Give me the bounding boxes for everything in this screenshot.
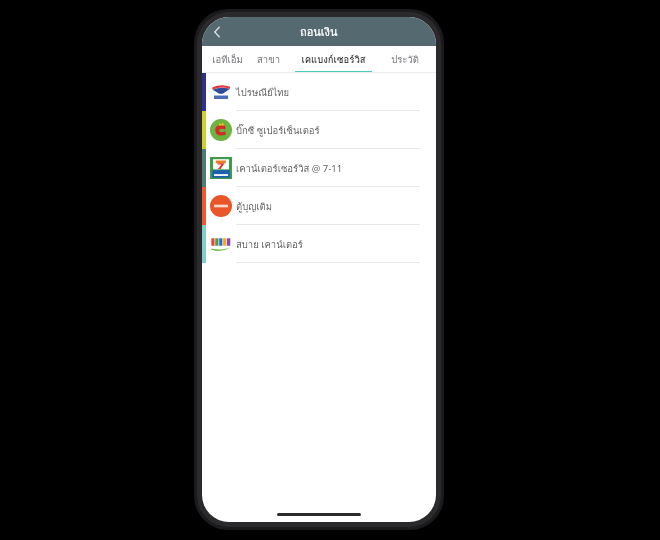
button[interactable]: Back bbox=[204, 19, 230, 45]
staticText: เคแบงก์เซอร์วิส bbox=[301, 52, 366, 67]
staticText: ถอนเงิน bbox=[300, 23, 338, 40]
button[interactable]: เคาน์เตอร์เซอร์วิส @ 7-11 bbox=[202, 149, 436, 187]
staticText: ตู้บุญเติม bbox=[236, 199, 272, 214]
button[interactable]: ไปรษณีย์ไทย bbox=[202, 73, 436, 111]
button[interactable]: เคแบงก์เซอร์วิส bbox=[288, 46, 378, 73]
button[interactable]: ตู้บุญเติม bbox=[202, 187, 436, 225]
button[interactable]: ประวัติ bbox=[378, 46, 432, 73]
staticText: สบาย เคาน์เตอร์ bbox=[236, 237, 303, 252]
staticText: ไปรษณีย์ไทย bbox=[236, 85, 290, 100]
button[interactable]: เอทีเอ็ม bbox=[206, 46, 248, 73]
staticText: เคาน์เตอร์เซอร์วิส @ 7-11 bbox=[236, 161, 343, 176]
button[interactable]: สาขา bbox=[248, 46, 288, 73]
button[interactable]: สบาย เคาน์เตอร์ bbox=[202, 225, 436, 263]
staticText: สาขา bbox=[257, 52, 280, 67]
button[interactable]: บิ๊กซี ซูเปอร์เซ็นเตอร์ bbox=[202, 111, 436, 149]
staticText: เอทีเอ็ม bbox=[212, 52, 243, 67]
staticText: บิ๊กซี ซูเปอร์เซ็นเตอร์ bbox=[236, 123, 320, 138]
staticText: ประวัติ bbox=[391, 52, 419, 67]
